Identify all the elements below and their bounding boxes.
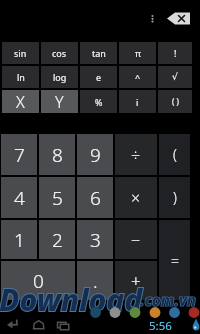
button[interactable]: sin — [2, 42, 39, 64]
staticText: i — [136, 96, 139, 108]
staticText: √ — [172, 72, 178, 82]
button[interactable]: 6 — [77, 177, 113, 218]
button[interactable]: Y — [41, 90, 78, 113]
staticText: .com.vn — [140, 290, 196, 310]
staticText: 5 — [52, 185, 63, 211]
button[interactable] — [55, 315, 77, 333]
staticText: ln — [17, 71, 25, 83]
staticText: cos — [52, 47, 67, 59]
staticText: X — [16, 91, 25, 113]
button[interactable]: 5 — [39, 177, 75, 218]
button[interactable]: − — [115, 220, 157, 259]
staticText: sin — [14, 47, 27, 59]
button[interactable]: = — [159, 220, 190, 300]
button[interactable]: × — [115, 177, 157, 218]
staticText: 5:56 — [149, 318, 172, 334]
staticText: .com.vn — [140, 290, 196, 310]
button[interactable]: cos — [41, 42, 78, 64]
button[interactable]: 1 — [1, 220, 37, 259]
button[interactable]: 9 — [77, 134, 113, 175]
button[interactable]: 0 — [1, 261, 75, 300]
staticText: % — [95, 96, 103, 108]
button[interactable]: + — [115, 261, 157, 300]
staticText: 8 — [52, 142, 63, 168]
button[interactable]: X — [2, 90, 39, 113]
staticText: tan — [92, 47, 106, 59]
button[interactable]: 2 — [39, 220, 75, 259]
button[interactable]: √ — [158, 66, 192, 88]
staticText: 6 — [90, 185, 101, 211]
button[interactable]: % — [80, 90, 117, 113]
button[interactable] — [4, 315, 26, 333]
button[interactable] — [163, 8, 195, 29]
staticText: 2 — [52, 227, 63, 253]
staticText: ! — [174, 47, 177, 59]
button[interactable]: . — [77, 261, 113, 300]
button[interactable]: ( — [159, 134, 190, 175]
staticText: ) — [173, 188, 177, 207]
button[interactable]: ^ — [119, 66, 156, 88]
button[interactable]: i — [119, 90, 156, 113]
button[interactable]: 7 — [1, 134, 37, 175]
staticText: = — [171, 251, 179, 270]
staticText: + — [131, 269, 141, 292]
button[interactable]: π — [119, 42, 156, 64]
staticText: ^ — [135, 71, 141, 83]
staticText: . — [93, 268, 98, 294]
button[interactable]: ) — [159, 177, 190, 218]
staticText: Download — [0, 279, 143, 320]
staticText: 3 — [90, 227, 101, 253]
staticText: ( ) — [172, 96, 179, 107]
button[interactable]: log — [41, 66, 78, 88]
button[interactable]: ÷ — [115, 134, 157, 175]
staticText: 9 — [90, 142, 101, 168]
staticText: × — [131, 187, 141, 209]
staticText: Download — [0, 279, 143, 320]
staticText: − — [131, 229, 141, 251]
button[interactable]: e — [80, 66, 117, 88]
staticText: 4 — [14, 185, 25, 211]
button[interactable]: 3 — [77, 220, 113, 259]
staticText: 7 — [14, 142, 25, 168]
button[interactable] — [30, 315, 52, 333]
staticText: 0 — [33, 268, 44, 294]
button[interactable]: ! — [158, 42, 192, 64]
staticText: log — [53, 71, 67, 83]
button[interactable]: 4 — [1, 177, 37, 218]
staticText: 1 — [14, 227, 25, 253]
button[interactable]: 8 — [39, 134, 75, 175]
staticText: Y — [55, 91, 64, 113]
staticText: e — [96, 71, 102, 83]
staticText: π — [135, 47, 141, 59]
staticText: ÷ — [131, 144, 141, 166]
button[interactable]: ( ) — [158, 90, 192, 113]
staticText: ( — [173, 145, 177, 164]
button[interactable]: tan — [80, 42, 117, 64]
button[interactable]: ln — [2, 66, 39, 88]
